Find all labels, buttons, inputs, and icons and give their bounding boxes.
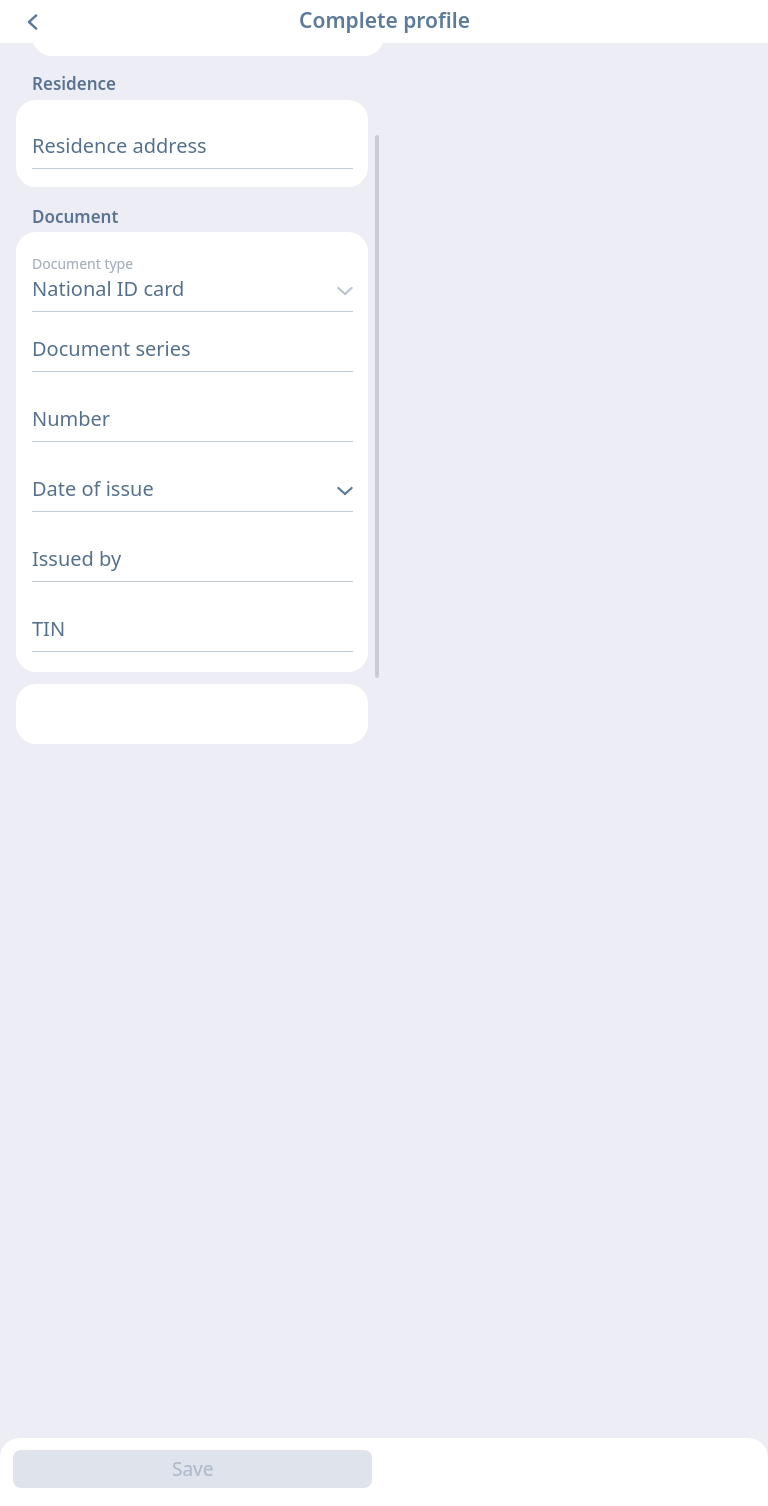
- staticText: Complete profile: [299, 6, 470, 35]
- button[interactable]: Residence address: [16, 126, 368, 182]
- button[interactable]: Back: [17, 6, 49, 38]
- staticText: TIN: [32, 615, 66, 642]
- button[interactable]: Issued by: [16, 539, 368, 595]
- staticText: National ID card: [32, 275, 185, 302]
- staticText: Number: [32, 405, 111, 432]
- staticText: Date of issue: [32, 475, 154, 502]
- staticText: Document type: [32, 254, 134, 273]
- button[interactable]: Document series: [16, 329, 368, 385]
- staticText: Residence: [32, 72, 116, 95]
- button[interactable]: Number: [16, 399, 368, 455]
- button[interactable]: Document type: [16, 246, 368, 316]
- staticText: Residence address: [32, 132, 207, 159]
- staticText: Document: [32, 205, 119, 228]
- button[interactable]: Date of issue: [16, 469, 368, 525]
- button[interactable]: Save: [13, 1450, 372, 1488]
- button[interactable]: TIN: [16, 609, 368, 665]
- staticText: Save: [172, 1456, 214, 1482]
- staticText: Issued by: [32, 545, 122, 572]
- staticText: Document series: [32, 335, 191, 362]
